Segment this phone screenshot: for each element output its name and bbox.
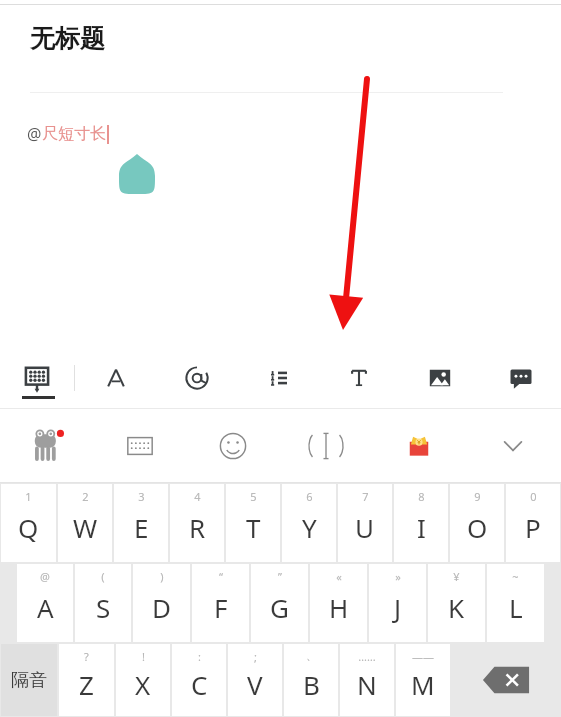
staticText: 2 (82, 489, 89, 504)
button[interactable]: Keyboard layout (93, 409, 186, 483)
staticText: @ (40, 569, 50, 584)
button[interactable]: Numbered list (237, 346, 318, 409)
button[interactable]: 9 (450, 484, 504, 562)
staticText: 8 (418, 489, 425, 504)
staticText: J (394, 590, 402, 625)
staticText: 4 (194, 489, 201, 504)
staticText: : (198, 649, 201, 664)
staticText: 、 (306, 649, 317, 663)
button[interactable]: Assistant (0, 409, 93, 483)
button[interactable]: 0 (506, 484, 560, 562)
button[interactable]: : (172, 644, 226, 716)
staticText: F (214, 590, 228, 625)
button[interactable]: 6 (282, 484, 336, 562)
staticText: —— (412, 649, 434, 664)
button[interactable]: Keyboard (0, 346, 74, 409)
staticText: ; (254, 649, 257, 664)
staticText: Y (302, 510, 317, 545)
button[interactable]: Collapse keyboard (465, 409, 561, 483)
staticText: P (525, 510, 541, 545)
staticText: M (411, 667, 435, 702)
button[interactable]: “ (192, 564, 249, 642)
staticText: I (417, 510, 426, 545)
button[interactable]: Red packet (372, 409, 465, 483)
button[interactable]: 8 (394, 484, 448, 562)
staticText: C (191, 667, 208, 702)
button[interactable]: ” (251, 564, 308, 642)
staticText: 6 (306, 489, 313, 504)
staticText: X (135, 667, 151, 702)
button[interactable]: 7 (338, 484, 392, 562)
button[interactable]: ( (75, 564, 131, 642)
staticText: K (448, 590, 465, 625)
button[interactable]: 隔音 (1, 644, 57, 716)
staticText: L (509, 590, 523, 625)
button[interactable]: Text select (279, 409, 372, 483)
staticText: @ (27, 123, 42, 145)
staticText: W (73, 510, 98, 545)
staticText: ” (278, 569, 282, 584)
button[interactable]: Emoji (186, 409, 279, 483)
staticText: 隔音 (11, 669, 47, 692)
button[interactable]: ¥ (428, 564, 485, 642)
staticText: Z (79, 667, 94, 702)
staticText: A (37, 590, 54, 625)
staticText: » (395, 569, 401, 584)
staticText: E (134, 510, 149, 545)
button[interactable]: Backspace (452, 644, 560, 716)
staticText: Q (18, 510, 39, 545)
staticText: R (189, 510, 206, 545)
staticText: 3 (138, 489, 145, 504)
staticText: ! (142, 649, 145, 664)
button[interactable]: « (310, 564, 367, 642)
staticText: N (357, 667, 377, 702)
button[interactable]: » (369, 564, 426, 642)
staticText: H (329, 590, 349, 625)
button[interactable]: Image (399, 346, 480, 409)
staticText: T (246, 510, 261, 545)
staticText: ( (101, 569, 105, 584)
staticText: 尺短寸长 (42, 124, 106, 144)
button[interactable]: ) (133, 564, 190, 642)
staticText: G (270, 590, 289, 625)
staticText: 无标题 (30, 23, 105, 54)
button[interactable]: ? (59, 644, 114, 716)
staticText: 9 (474, 489, 481, 504)
button[interactable]: —— (396, 644, 450, 716)
staticText: ? (84, 649, 89, 664)
staticText: O (467, 510, 488, 545)
button[interactable]: Font (75, 346, 156, 409)
staticText: ) (160, 569, 164, 584)
staticText: S (96, 590, 111, 625)
button[interactable]: ; (228, 644, 282, 716)
staticText: 5 (250, 489, 257, 504)
staticText: V (247, 667, 263, 702)
button[interactable]: 4 (170, 484, 224, 562)
button[interactable]: Mention (156, 346, 237, 409)
button[interactable]: Comment (480, 346, 561, 409)
staticText: …… (358, 649, 376, 664)
button[interactable]: 、 (284, 644, 338, 716)
staticText: D (152, 590, 171, 625)
button[interactable]: 5 (226, 484, 280, 562)
staticText: 0 (530, 489, 537, 504)
staticText: B (303, 667, 320, 702)
staticText: “ (219, 569, 223, 584)
button[interactable]: 3 (114, 484, 168, 562)
button[interactable]: …… (340, 644, 394, 716)
button[interactable]: @ (17, 564, 73, 642)
button[interactable]: ~ (487, 564, 544, 642)
staticText: 1 (25, 489, 32, 504)
button[interactable]: 2 (58, 484, 112, 562)
staticText: ¥ (453, 569, 460, 584)
staticText: « (336, 569, 342, 584)
staticText: ~ (512, 569, 519, 584)
button[interactable]: 1 (1, 484, 56, 562)
button[interactable]: Text style (318, 346, 399, 409)
button[interactable]: ! (116, 644, 170, 716)
staticText: U (355, 510, 375, 545)
staticText: 7 (362, 489, 369, 504)
